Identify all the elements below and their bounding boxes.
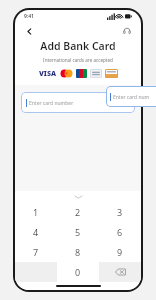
staticText: 5	[75, 226, 81, 238]
staticText: International cards are accepted	[43, 57, 113, 63]
button[interactable]: 6	[99, 222, 141, 242]
staticText: 8	[75, 246, 81, 258]
staticText: 0	[75, 266, 81, 278]
staticText: 9	[117, 246, 123, 258]
button[interactable]: Backspace	[99, 262, 141, 282]
staticText: Add Bank Card	[40, 39, 116, 53]
button[interactable]: 0	[57, 262, 99, 282]
button[interactable]: 3	[99, 202, 141, 222]
button[interactable]: Enter card num	[106, 86, 156, 107]
staticText: 4	[33, 226, 39, 238]
button[interactable]: Blank	[15, 262, 57, 282]
button[interactable]: 1	[15, 202, 57, 222]
button[interactable]: 2	[57, 202, 99, 222]
staticText: 6	[117, 226, 123, 238]
button[interactable]: 7	[15, 242, 57, 262]
button[interactable]: 9	[99, 242, 141, 262]
staticText: Enter card number	[29, 100, 74, 107]
button[interactable]: Enter card number	[21, 92, 135, 113]
button[interactable]: Support	[120, 24, 134, 38]
button[interactable]: 5	[57, 222, 99, 242]
staticText: VISA	[39, 69, 57, 79]
button[interactable]: 4	[15, 222, 57, 242]
staticText: 3	[117, 206, 123, 218]
button[interactable]: 8	[57, 242, 99, 262]
button[interactable]: Back	[22, 24, 36, 38]
staticText: 7	[33, 246, 39, 258]
staticText: Enter card num	[113, 94, 150, 101]
staticText: 2	[75, 206, 81, 218]
button[interactable]: Hide keyboard	[15, 191, 141, 202]
staticText: 1	[33, 206, 39, 218]
staticText: 9:41	[24, 13, 34, 20]
